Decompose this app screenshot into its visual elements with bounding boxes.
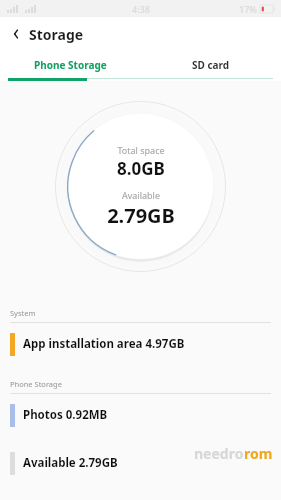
button[interactable]: Available 2.79GB xyxy=(0,442,281,484)
staticText: 4:38 xyxy=(132,3,150,15)
staticText: 17% xyxy=(239,3,257,15)
staticText: System xyxy=(10,308,36,318)
button[interactable]: Photos 0.92MB xyxy=(0,394,281,436)
other: Back xyxy=(10,28,22,40)
staticText: 2.79GB xyxy=(107,202,175,229)
staticText: Phone Storage xyxy=(10,379,62,389)
button[interactable]: Phone Storage xyxy=(0,51,140,78)
button[interactable]: SD card xyxy=(140,51,281,78)
staticText: Available 2.79GB xyxy=(23,455,118,471)
staticText: Photos 0.92MB xyxy=(23,407,108,423)
button[interactable]: Back xyxy=(0,17,281,51)
staticText: 8.0GB xyxy=(117,157,165,180)
staticText: Phone Storage xyxy=(34,58,107,72)
staticText: Total space xyxy=(117,144,165,156)
staticText: Storage xyxy=(29,25,84,44)
staticText: needro xyxy=(194,444,244,463)
staticText: rom xyxy=(244,444,273,463)
staticText: App installation area 4.97GB xyxy=(23,336,185,352)
button[interactable]: App installation area 4.97GB xyxy=(0,323,281,365)
staticText: Available xyxy=(122,189,160,201)
staticText: SD card xyxy=(192,58,230,72)
